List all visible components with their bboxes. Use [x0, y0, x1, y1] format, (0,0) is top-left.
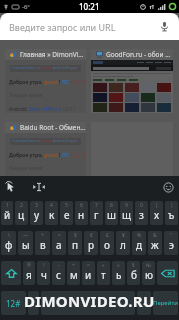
- button[interactable]: Введите запрос или URL: [0, 13, 179, 40]
- button[interactable]: Space: [41, 291, 135, 315]
- staticText: Android: [53, 138, 66, 143]
- button[interactable]: ": [164, 231, 178, 255]
- staticText: р: [88, 238, 95, 252]
- staticText: 12#: [6, 298, 21, 309]
- staticText: 0: [140, 202, 143, 209]
- staticText: с: [56, 268, 61, 282]
- staticText: щ: [122, 208, 131, 222]
- staticText: и: [85, 268, 92, 282]
- staticText: §: [132, 262, 135, 269]
- button[interactable]: 3: [30, 201, 43, 225]
- staticText: м: [70, 268, 78, 282]
- staticText: Перейти: [153, 299, 178, 307]
- staticText: 5: [65, 202, 68, 209]
- button[interactable]: Перейти: [153, 291, 178, 315]
- button[interactable]: 5: [60, 201, 73, 225]
- staticText: Главная: [12, 138, 26, 143]
- button[interactable]: +: [67, 261, 80, 285]
- staticText: Форум: [66, 65, 78, 70]
- staticText: Доброе утро,: [9, 79, 44, 86]
- staticText: Форум: [66, 138, 78, 143]
- button[interactable]: Voice search: [159, 21, 170, 32]
- button[interactable]: 6: [75, 201, 88, 225]
- button[interactable]: Baidu Root - Обмен...: [5, 122, 86, 186]
- staticText: DIMONVIDEO.RU: [24, 291, 155, 311]
- button[interactable]: ,: [28, 291, 39, 315]
- button[interactable]: Главная » DimonVid...: [5, 49, 86, 113]
- staticText: ш: [107, 208, 116, 222]
- button[interactable]: 1: [1, 201, 13, 225]
- staticText: !: [59, 152, 62, 159]
- button[interactable]: Emoji: [163, 182, 174, 193]
- button[interactable]: -: [52, 261, 65, 285]
- button[interactable]: 8: [105, 201, 118, 225]
- staticText: .: [143, 294, 146, 308]
- button[interactable]: €: [84, 231, 98, 255]
- button[interactable]: §: [127, 261, 140, 285]
- staticText: ¥: [122, 232, 125, 239]
- button[interactable]: £: [100, 231, 114, 255]
- staticText: х: [154, 208, 160, 222]
- button[interactable]: /: [37, 261, 50, 285]
- staticText: GoodFon.ru - обои д...: [106, 50, 173, 59]
- button[interactable]: 7: [90, 201, 103, 225]
- staticText: Smart Office 2: [29, 179, 61, 185]
- button[interactable]: Shift: [1, 261, 21, 285]
- button[interactable]: [91, 122, 173, 186]
- button[interactable]: =: [52, 231, 66, 255]
- staticText: !: [59, 79, 62, 86]
- staticText: guest: [44, 152, 59, 159]
- button[interactable]: 4: [45, 201, 58, 225]
- button[interactable]: №: [142, 261, 155, 285]
- button[interactable]: (: [150, 201, 163, 225]
- staticText: guest: [44, 79, 59, 86]
- staticText: д: [136, 238, 143, 252]
- button[interactable]: ): [165, 201, 178, 225]
- button[interactable]: 0: [135, 201, 148, 225]
- staticText: 8: [110, 202, 113, 209]
- staticText: в: [40, 238, 46, 252]
- button[interactable]: Handwriting input: [4, 181, 16, 193]
- staticText: Новости: [26, 138, 40, 143]
- button[interactable]: —: [18, 231, 33, 255]
- staticText: [0 | 0]: [70, 152, 86, 159]
- button[interactable]: ¥: [116, 231, 130, 255]
- staticText: Android: [53, 65, 66, 70]
- staticText: Обзоры: [40, 138, 53, 143]
- staticText: $: [74, 232, 77, 239]
- button[interactable]: $: [68, 231, 82, 255]
- button[interactable]: &: [148, 231, 162, 255]
- staticText: Файлы: [78, 65, 79, 72]
- button[interactable]: .: [137, 291, 151, 315]
- staticText: Главная » DimonVid...: [20, 50, 86, 59]
- button[interactable]: «: [97, 261, 110, 285]
- staticText: =: [87, 262, 90, 269]
- button[interactable]: Move cursor: [33, 181, 45, 193]
- staticText: 7: [95, 202, 98, 209]
- button[interactable]: 9: [120, 201, 133, 225]
- button[interactable]: 2: [15, 201, 28, 225]
- staticText: ПС: [62, 79, 70, 86]
- staticText: ,: [32, 294, 35, 308]
- button[interactable]: \: [1, 231, 16, 255]
- staticText: н: [78, 208, 85, 222]
- staticText: ж: [151, 238, 159, 252]
- staticText: №: [146, 262, 152, 269]
- button[interactable]: »: [112, 261, 125, 285]
- staticText: 2: [20, 202, 23, 209]
- button[interactable]: ®: [23, 261, 35, 285]
- staticText: у: [34, 208, 40, 222]
- staticText: Обзоры: [40, 65, 53, 70]
- button[interactable]: %: [132, 231, 146, 255]
- button[interactable]: 12#: [1, 291, 26, 315]
- staticText: Введите запрос или URL: [9, 21, 116, 33]
- staticText: »: [117, 262, 120, 269]
- button[interactable]: =: [82, 261, 95, 285]
- button[interactable]: GoodFon.ru - обои д...: [91, 49, 173, 113]
- button[interactable]: +: [35, 231, 50, 255]
- button[interactable]: Backspace: [157, 261, 178, 285]
- staticText: &: [153, 232, 157, 239]
- staticText: Baidu Root - Обмен...: [20, 123, 86, 132]
- staticText: Главная: [12, 65, 26, 70]
- staticText: ь: [116, 268, 122, 282]
